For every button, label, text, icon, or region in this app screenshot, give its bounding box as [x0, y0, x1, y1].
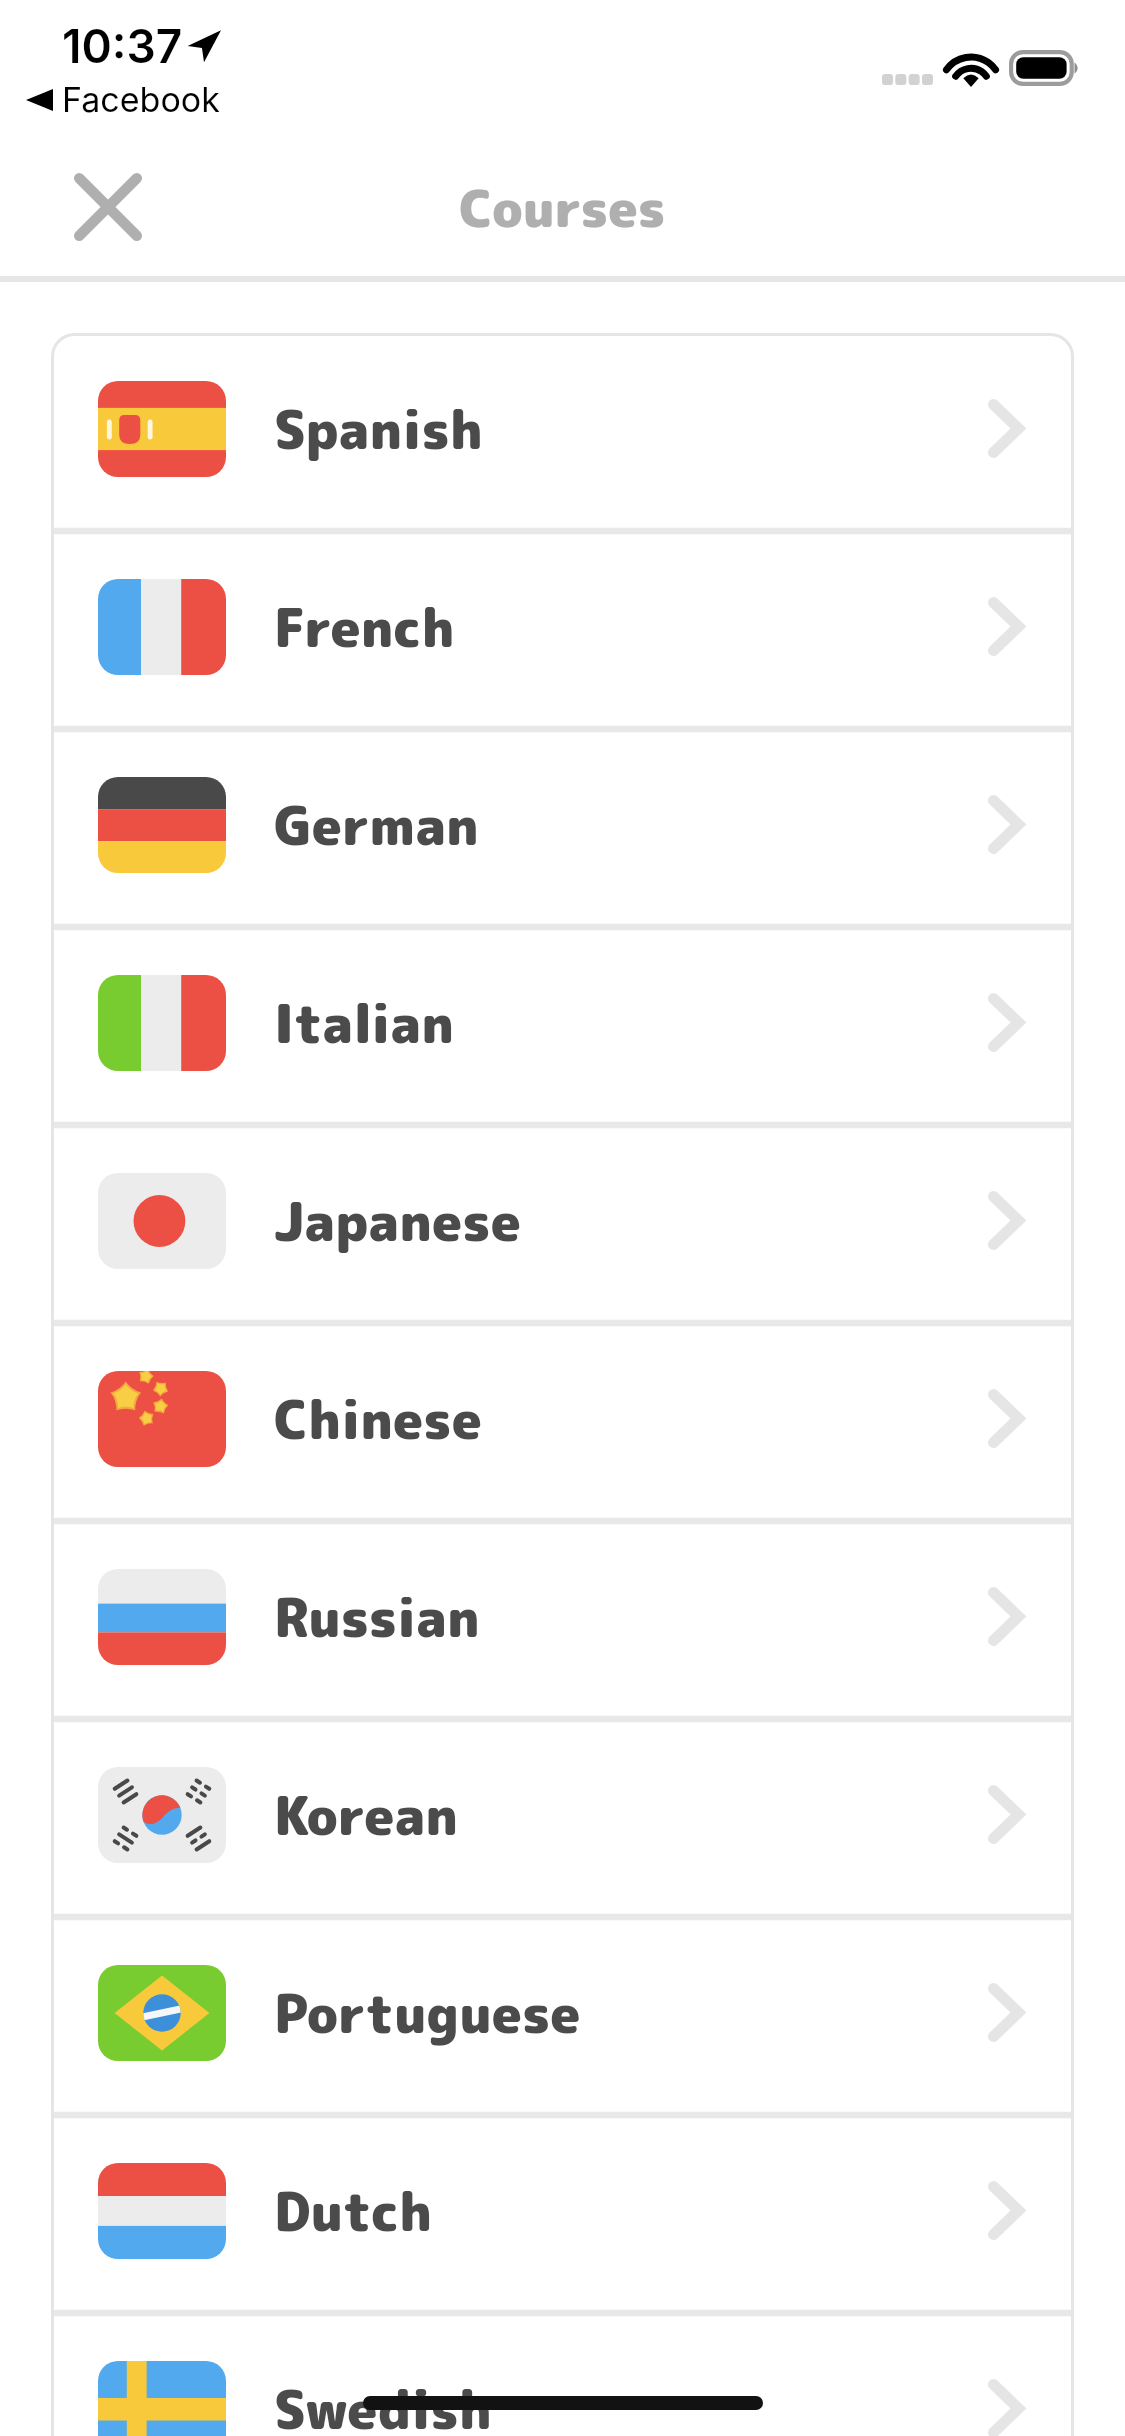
button[interactable]: Spanish: [51, 333, 1074, 531]
button[interactable]: Close: [42, 141, 174, 273]
button[interactable]: French: [51, 531, 1074, 729]
staticText: Korean: [274, 1779, 459, 1852]
staticText: Portuguese: [274, 1977, 581, 2050]
staticText: Italian: [274, 987, 455, 1060]
staticText: French: [274, 591, 455, 664]
button[interactable]: Facebook: [26, 80, 220, 120]
button[interactable]: Italian: [51, 927, 1074, 1125]
staticText: Courses: [459, 172, 666, 243]
staticText: Facebook: [62, 79, 220, 119]
button[interactable]: Portuguese: [51, 1917, 1074, 2115]
staticText: German: [274, 789, 479, 862]
staticText: Swedish: [274, 2373, 492, 2436]
staticText: Japanese: [274, 1185, 521, 1258]
staticText: Chinese: [274, 1383, 482, 1456]
button[interactable]: Korean: [51, 1719, 1074, 1917]
staticText: Russian: [274, 1581, 480, 1654]
button[interactable]: Dutch: [51, 2115, 1074, 2313]
button[interactable]: Russian: [51, 1521, 1074, 1719]
button[interactable]: Japanese: [51, 1125, 1074, 1323]
button[interactable]: German: [51, 729, 1074, 927]
button[interactable]: Swedish: [51, 2313, 1074, 2436]
staticText: Dutch: [274, 2175, 433, 2248]
staticText: Spanish: [274, 393, 483, 466]
staticText: 10:37: [62, 18, 183, 74]
button[interactable]: Chinese: [51, 1323, 1074, 1521]
